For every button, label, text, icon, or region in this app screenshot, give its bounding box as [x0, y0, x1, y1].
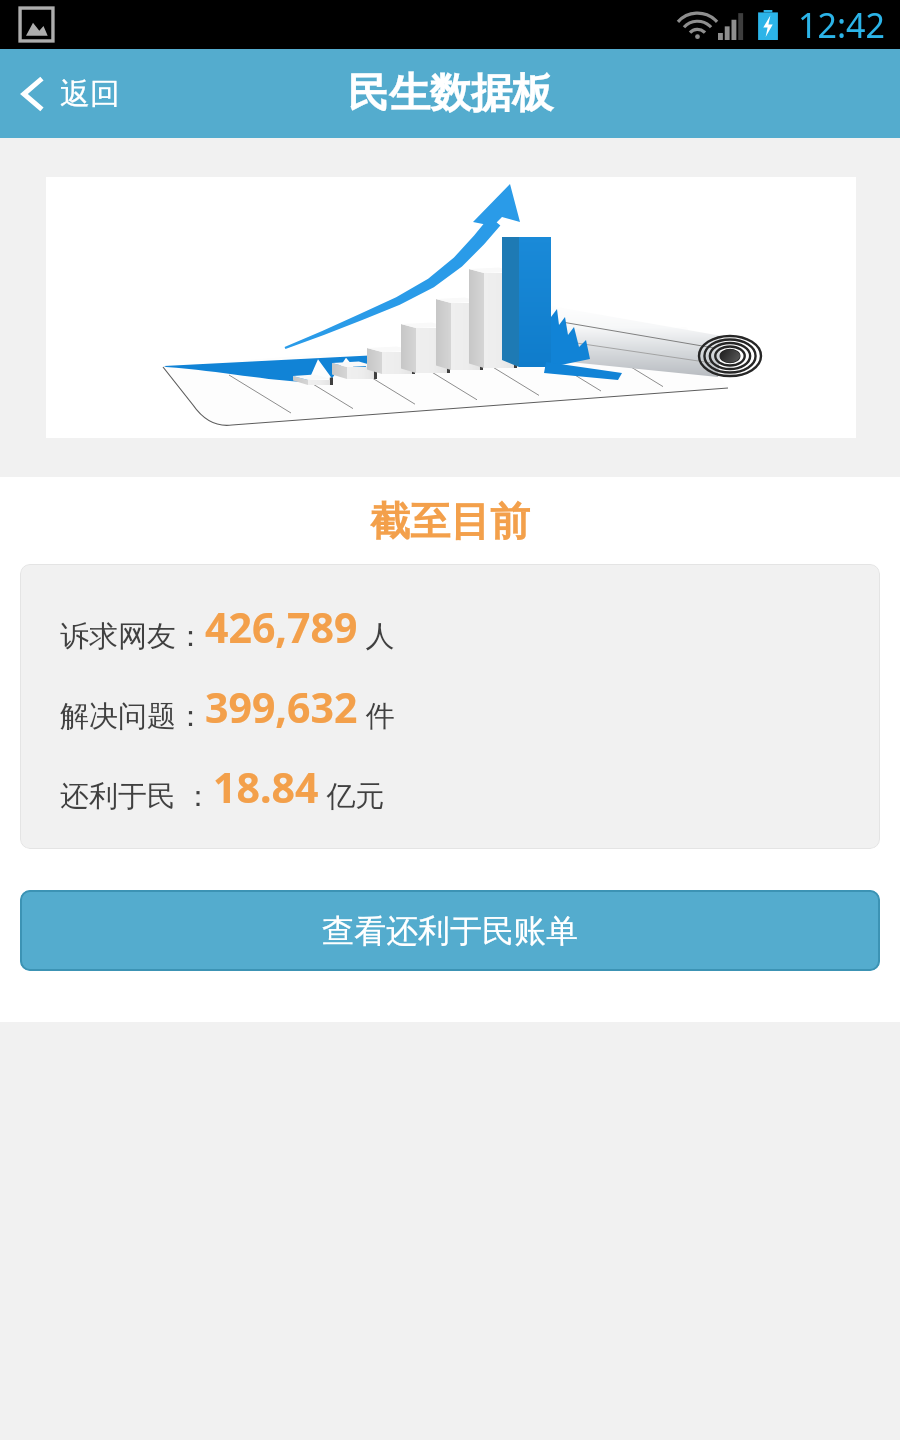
- staticText: 截至目前: [370, 496, 530, 546]
- staticText: 民生数据板: [348, 68, 553, 120]
- staticText: 还利于民 ：: [60, 775, 213, 815]
- button[interactable]: 返回: [0, 65, 136, 123]
- staticText: 399,632: [205, 679, 358, 735]
- staticText: 返回: [60, 75, 120, 113]
- staticText: 人: [358, 615, 395, 655]
- staticText: 亿元: [319, 775, 385, 815]
- staticText: 诉求网友：: [60, 618, 205, 655]
- staticText: 查看还利于民账单: [322, 911, 578, 951]
- staticText: 18.84: [213, 759, 319, 815]
- staticText: 件: [358, 695, 395, 735]
- button[interactable]: 查看还利于民账单: [20, 890, 880, 971]
- staticText: 12:42: [798, 2, 885, 48]
- staticText: 解决问题：: [60, 698, 205, 735]
- staticText: 426,789: [205, 599, 358, 655]
